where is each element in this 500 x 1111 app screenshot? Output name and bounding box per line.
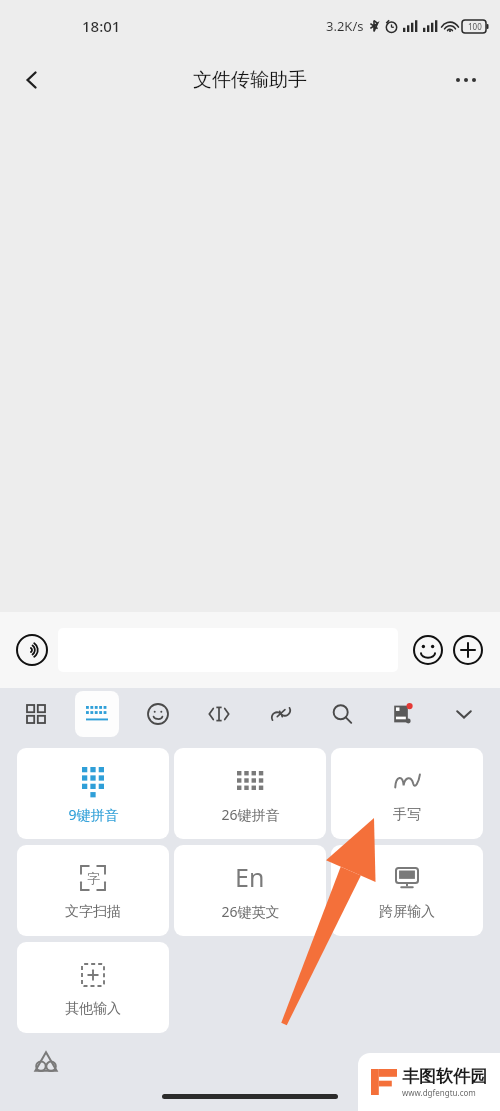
button[interactable]: More functions — [448, 630, 488, 670]
staticText: En — [235, 860, 265, 894]
staticText: 100 — [468, 21, 482, 32]
button[interactable]: 手写 — [331, 748, 483, 839]
button[interactable]: Emoticons — [136, 692, 180, 736]
button[interactable]: Emoji — [408, 630, 448, 670]
button[interactable]: 字 — [17, 845, 169, 936]
staticText: 26键英文 — [221, 902, 280, 921]
staticText: 18:01 — [82, 16, 121, 36]
staticText: 26键拼音 — [221, 805, 280, 824]
button[interactable]: Grid — [14, 692, 58, 736]
button[interactable]: Voice input — [12, 630, 52, 670]
button[interactable]: Keyboard — [75, 691, 119, 737]
button[interactable]: Collapse keyboard — [442, 692, 486, 736]
button[interactable]: 跨屏输入 — [331, 845, 483, 936]
staticText: 9键拼音 — [68, 805, 119, 824]
staticText: 字 — [87, 870, 100, 886]
button[interactable]: Back — [8, 56, 56, 104]
staticText: 手写 — [393, 806, 421, 824]
button[interactable]: Clipboard link — [259, 692, 303, 736]
button[interactable]: 9键拼音 — [17, 748, 169, 839]
button[interactable]: 其他输入 — [17, 942, 169, 1033]
button[interactable]: Stickers — [381, 692, 425, 736]
staticText: 其他输入 — [65, 1000, 121, 1018]
staticText: 文字扫描 — [65, 903, 121, 921]
button[interactable]: Search — [320, 692, 364, 736]
button[interactable]: Input method settings — [26, 1043, 66, 1083]
button[interactable]: Text cursor tools — [197, 692, 241, 736]
button[interactable]: En — [174, 845, 326, 936]
staticText: 丰图软件园 — [402, 1066, 487, 1087]
staticText: 3.2K/s — [326, 17, 364, 35]
button[interactable]: More options — [442, 56, 490, 104]
staticText: www.dgfengtu.com — [402, 1087, 476, 1098]
staticText: 文件传输助手 — [193, 68, 307, 92]
staticText: 跨屏输入 — [379, 903, 435, 921]
button[interactable]: 26键拼音 — [174, 748, 326, 839]
